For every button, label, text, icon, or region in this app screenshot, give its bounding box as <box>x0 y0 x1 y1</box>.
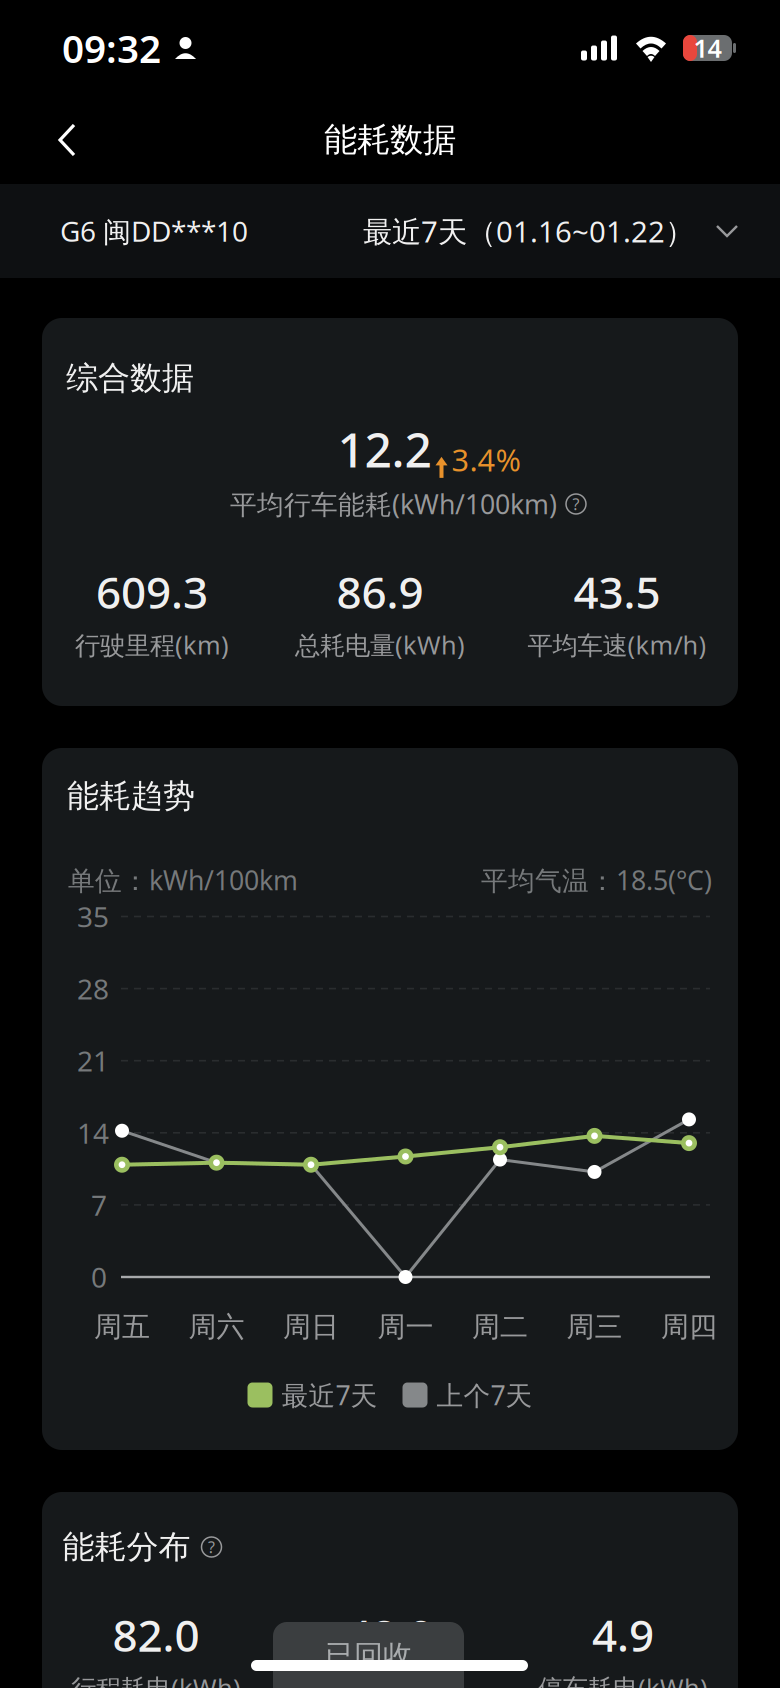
staticText: 4.9 <box>592 1605 654 1664</box>
staticText: 28 <box>77 970 109 1007</box>
staticText: 43.5 <box>573 562 660 621</box>
staticText: 行程耗电(kWh) <box>71 1671 241 1688</box>
staticText: 09:32 <box>62 22 161 74</box>
staticText: 周日 <box>283 1310 339 1344</box>
staticText: 86.9 <box>336 562 423 621</box>
button[interactable]: Back <box>32 100 102 180</box>
staticText: 单位：kWh/100km <box>68 862 298 898</box>
staticText: 609.3 <box>96 562 208 621</box>
staticText: 14 <box>77 1114 109 1151</box>
staticText: 14 <box>693 31 721 65</box>
staticText: 82.0 <box>112 1605 199 1664</box>
staticText: 平均车速(km/h) <box>527 628 706 661</box>
staticText: 最近7天（01.16~01.22） <box>363 211 694 250</box>
staticText: 能耗趋势 <box>67 776 195 816</box>
staticText: 周三 <box>566 1310 622 1344</box>
staticText: ? <box>572 493 579 515</box>
staticText: 周二 <box>472 1310 528 1344</box>
staticText: 周四 <box>661 1310 717 1344</box>
staticText: 周一 <box>377 1310 433 1344</box>
staticText: 能耗分布 <box>62 1527 190 1567</box>
staticText: 已回收 <box>325 1638 412 1674</box>
button[interactable]: 最近7天（01.16~01.22） <box>0 211 738 250</box>
staticText: G6 闽DD***10 <box>60 212 248 250</box>
staticText: 平均行车能耗(kWh/100km) <box>230 486 557 522</box>
staticText: 停车耗电(kWh) <box>538 1671 708 1688</box>
staticText: 上个7天 <box>436 1377 532 1413</box>
staticText: 周六 <box>188 1310 244 1344</box>
staticText: 周五 <box>94 1310 150 1344</box>
staticText: ? <box>208 1536 215 1558</box>
staticText: 21 <box>77 1042 109 1079</box>
staticText: 48.0 <box>346 1605 433 1664</box>
staticText: 最近7天 <box>281 1377 377 1413</box>
staticText: 12.2 <box>337 417 431 481</box>
staticText: 平均气温：18.5(°C) <box>481 862 712 898</box>
staticText: 能耗数据 <box>324 119 456 160</box>
staticText: 行驶里程(km) <box>75 628 229 661</box>
staticText: 0 <box>91 1258 107 1296</box>
staticText: 7 <box>91 1186 107 1223</box>
staticText: 3.4% <box>451 439 520 480</box>
staticText: 35 <box>77 898 109 935</box>
staticText: 综合数据 <box>66 358 194 398</box>
staticText: 总耗电量(kWh) <box>295 628 465 661</box>
